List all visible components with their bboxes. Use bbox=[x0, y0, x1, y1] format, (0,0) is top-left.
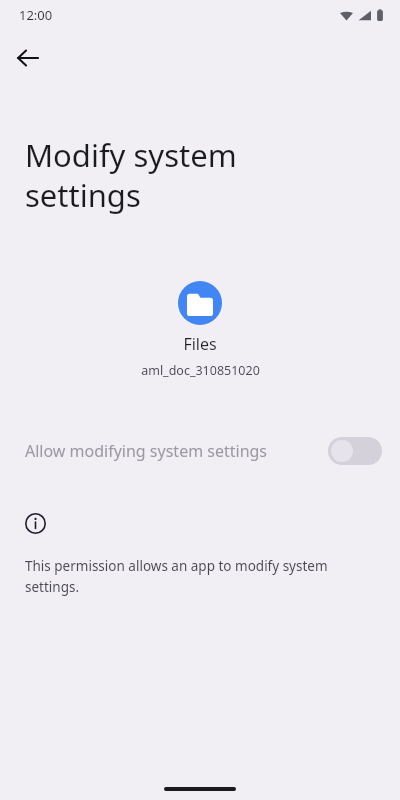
staticText: This permission allows an app to modify … bbox=[25, 557, 355, 596]
staticText: Modify system settings bbox=[25, 134, 325, 216]
staticText: aml_doc_310851020 bbox=[141, 362, 260, 379]
button[interactable]: Back bbox=[6, 36, 50, 80]
staticText: Files bbox=[183, 333, 217, 355]
button[interactable]: Allow modifying system settings bbox=[0, 420, 400, 482]
staticText: Allow modifying system settings bbox=[25, 440, 308, 462]
staticText: 12:00 bbox=[19, 6, 53, 24]
